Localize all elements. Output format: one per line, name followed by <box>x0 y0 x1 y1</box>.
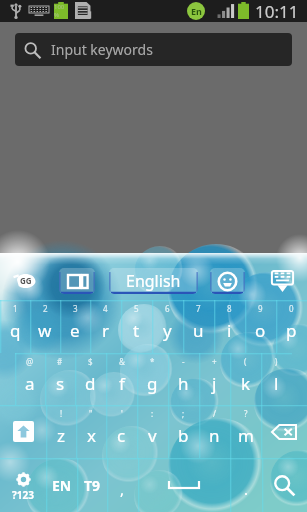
button[interactable]: 9 <box>245 300 276 353</box>
staticText: r <box>102 319 110 342</box>
staticText: 3 <box>73 303 78 314</box>
staticText: 6 <box>165 303 170 314</box>
staticText: 100% <box>54 3 68 19</box>
staticText: k <box>241 372 251 395</box>
staticText: m <box>238 424 254 447</box>
button[interactable]: 2 <box>30 300 60 353</box>
staticText: ?123 <box>12 488 34 502</box>
button[interactable]: ) <box>261 353 292 405</box>
button[interactable]: 1 <box>0 300 30 353</box>
staticText: b <box>178 424 189 447</box>
staticText: x <box>87 424 96 447</box>
button[interactable]: 6 <box>152 300 183 353</box>
staticText: u <box>193 319 204 342</box>
button[interactable]: & <box>106 353 137 405</box>
staticText: @ <box>26 356 34 367</box>
staticText: v <box>148 424 157 447</box>
button[interactable]: 5 <box>121 300 152 353</box>
button[interactable]: / <box>199 405 230 458</box>
staticText: - <box>182 356 185 367</box>
staticText: a <box>25 372 35 395</box>
staticText: 2 <box>43 303 48 314</box>
button[interactable]: , <box>107 458 138 512</box>
button[interactable]: ? <box>230 405 261 458</box>
staticText: : <box>151 408 154 419</box>
button[interactable]: Search <box>262 458 307 512</box>
staticText: e <box>70 319 80 342</box>
staticText: ! <box>60 408 63 419</box>
button[interactable]: ' <box>106 405 137 458</box>
staticText: 1 <box>13 303 18 314</box>
button[interactable]: Shift <box>0 405 46 458</box>
button[interactable]: $ <box>75 353 106 405</box>
staticText: n <box>209 424 220 447</box>
staticText: o <box>255 319 266 342</box>
button[interactable]: : <box>137 405 168 458</box>
button[interactable]: Hide keyboard <box>268 267 296 295</box>
staticText: s <box>56 372 65 395</box>
staticText: 7 <box>196 303 201 314</box>
staticText: English <box>126 270 181 292</box>
button[interactable]: Input keywords <box>15 33 292 66</box>
staticText: + <box>212 356 217 367</box>
button[interactable]: * <box>137 353 168 405</box>
staticText: i <box>227 319 232 342</box>
staticText: ' <box>121 408 123 419</box>
button[interactable]: GG logo <box>13 272 39 289</box>
staticText: l <box>274 372 279 395</box>
staticText: 5 <box>134 303 139 314</box>
button[interactable]: Space <box>138 458 230 512</box>
staticText: T9 <box>84 476 101 495</box>
staticText: * <box>150 356 155 367</box>
button[interactable]: 0 <box>276 300 307 353</box>
staticText: En <box>191 5 202 17</box>
staticText: z <box>57 424 65 447</box>
button[interactable]: # <box>45 353 75 405</box>
staticText: $ <box>88 356 93 367</box>
button[interactable]: " <box>76 405 106 458</box>
staticText: . <box>244 479 249 499</box>
staticText: t <box>133 319 140 342</box>
staticText: 9 <box>258 303 263 314</box>
staticText: d <box>85 372 96 395</box>
staticText: w <box>38 319 52 342</box>
staticText: h <box>178 372 189 395</box>
button[interactable]: . <box>230 458 262 512</box>
staticText: j <box>212 372 217 395</box>
staticText: " <box>89 408 93 419</box>
button[interactable]: 3 <box>60 300 90 353</box>
staticText: c <box>117 424 126 447</box>
staticText: g <box>147 372 158 395</box>
staticText: Input keywords <box>51 40 153 59</box>
button[interactable]: 8 <box>214 300 245 353</box>
staticText: 8 <box>227 303 232 314</box>
button[interactable]: Split keyboard <box>59 268 95 294</box>
staticText: EN <box>52 476 72 495</box>
button[interactable]: @ <box>15 353 45 405</box>
button[interactable]: Backspace <box>261 405 307 458</box>
button[interactable]: 4 <box>90 300 121 353</box>
staticText: 0 <box>289 303 294 314</box>
button[interactable]: - <box>168 353 199 405</box>
button[interactable]: ! <box>46 405 76 458</box>
button[interactable]: EN <box>46 458 77 512</box>
staticText: 10:11 <box>255 0 299 22</box>
staticText: q <box>10 319 21 342</box>
staticText: / <box>213 408 216 419</box>
button[interactable]: + <box>199 353 230 405</box>
staticText: GG <box>20 275 32 286</box>
staticText: ? <box>244 408 248 419</box>
staticText: ( <box>244 356 247 367</box>
staticText: ) <box>275 356 278 367</box>
button[interactable]: ?123 <box>0 458 46 512</box>
button[interactable]: T9 <box>77 458 107 512</box>
button[interactable]: 7 <box>183 300 214 353</box>
button[interactable]: Emoji <box>210 268 245 294</box>
staticText: f <box>119 372 125 395</box>
staticText: & <box>119 356 125 367</box>
button[interactable]: ( <box>230 353 261 405</box>
button[interactable]: English <box>109 268 198 294</box>
button[interactable]: ; <box>168 405 199 458</box>
staticText: p <box>286 319 297 342</box>
staticText: # <box>57 356 63 367</box>
